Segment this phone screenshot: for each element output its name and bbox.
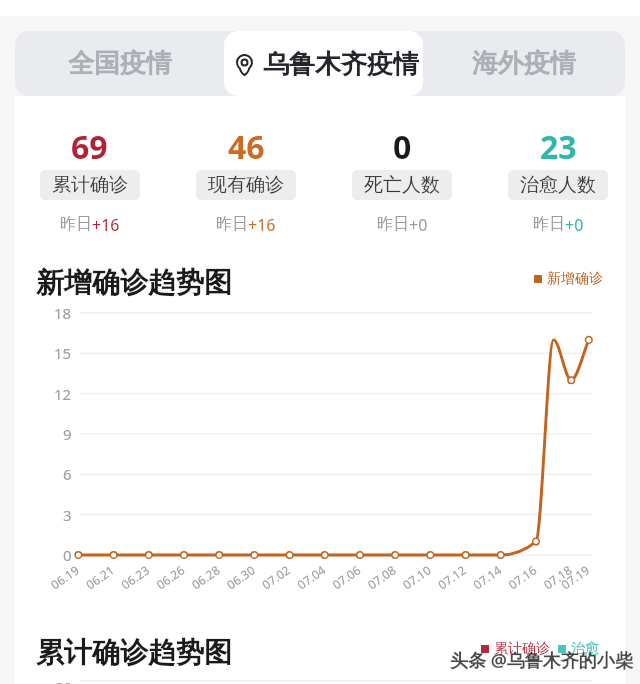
button[interactable]: 全国疫情 [15, 31, 224, 96]
staticText: 46 [228, 125, 265, 169]
button[interactable]: 0 [324, 125, 480, 236]
staticText: 累计确诊趋势图 [36, 635, 232, 670]
staticText: 现有确诊 [208, 173, 284, 197]
staticText: +16 [248, 214, 276, 236]
other: Location [236, 54, 253, 76]
staticText: 海外疫情 [472, 47, 576, 80]
button[interactable]: 海外疫情 [423, 31, 625, 96]
staticText: 昨日 [60, 214, 92, 234]
staticText: +16 [92, 214, 120, 236]
button[interactable]: Location [224, 31, 423, 96]
staticText: 累计确诊 [494, 640, 550, 658]
staticText: 0 [393, 125, 412, 169]
staticText: 死亡人数 [364, 173, 440, 197]
button[interactable]: 69 [11, 125, 168, 236]
staticText: 治愈人数 [520, 173, 596, 197]
staticText: +0 [565, 214, 584, 236]
button[interactable]: 46 [168, 125, 324, 236]
staticText: 新增确诊 [547, 270, 603, 288]
staticText: 治愈 [571, 640, 599, 658]
staticText: 昨日 [216, 214, 248, 234]
staticText: 69 [71, 125, 108, 169]
staticText: 23 [540, 125, 577, 169]
button[interactable]: 23 [480, 125, 636, 236]
staticText: 80 [55, 677, 73, 684]
staticText: 乌鲁木齐疫情 [263, 48, 419, 81]
staticText: 全国疫情 [68, 47, 172, 80]
staticText: 新增确诊趋势图 [36, 265, 232, 300]
staticText: +0 [409, 214, 428, 236]
staticText: 头条 @乌鲁木齐的小柴 [450, 648, 633, 673]
staticText: 累计确诊 [52, 173, 128, 197]
staticText: 昨日 [377, 214, 409, 234]
staticText: 昨日 [533, 214, 565, 234]
